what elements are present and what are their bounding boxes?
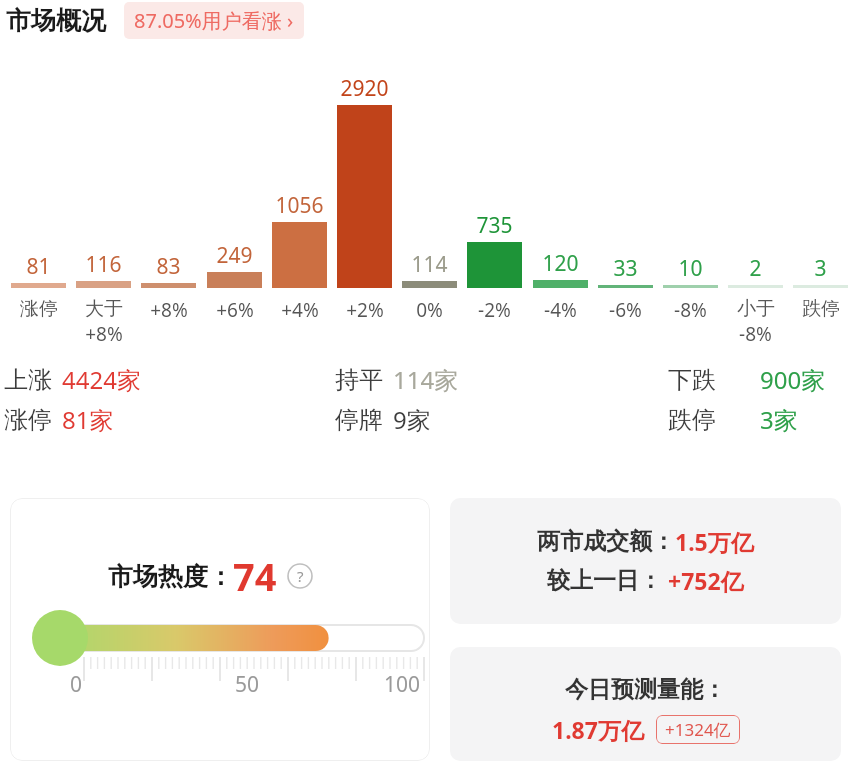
staticText: 大于 (85, 297, 123, 321)
staticText: -6% (609, 297, 642, 323)
staticText: 87.05%用户看涨 › (134, 7, 294, 34)
staticText: 下跌 (668, 365, 716, 395)
staticText: 116 (85, 250, 122, 279)
staticText: 小于 (737, 297, 775, 321)
staticText: 10 (678, 254, 703, 283)
staticText: +6% (216, 297, 254, 323)
staticText: 3家 (760, 403, 798, 436)
staticText: 1.87万亿 (552, 714, 644, 745)
staticText: 900家 (760, 363, 826, 396)
staticText: 停牌 (335, 405, 383, 435)
staticText: 83 (156, 252, 181, 281)
staticText: ? (297, 566, 304, 586)
staticText: 持平 (335, 365, 383, 395)
staticText: 81 (26, 252, 51, 281)
staticText: +752亿 (662, 565, 744, 596)
staticText: 3 (814, 254, 827, 283)
staticText: +8% (150, 297, 188, 323)
staticText: 33 (613, 254, 638, 283)
staticText: 50 (235, 670, 260, 699)
button[interactable]: 87.05%用户看涨 › (124, 2, 304, 39)
staticText: -8% (674, 297, 707, 323)
staticText: 2920 (340, 74, 389, 103)
staticText: 81家 (62, 403, 114, 436)
staticText: 涨停 (4, 405, 52, 435)
staticText: 2 (749, 254, 762, 283)
staticText: 249 (216, 241, 253, 270)
button[interactable]: 今日预测量能： (450, 647, 841, 761)
staticText: 较上一日： (547, 566, 662, 595)
staticText: +2% (346, 297, 384, 323)
staticText: 跌停 (668, 405, 716, 435)
staticText: 735 (476, 211, 513, 240)
button[interactable]: 市场热度： (10, 498, 430, 761)
staticText: -2% (478, 297, 511, 323)
staticText: 114家 (393, 363, 459, 396)
staticText: 9家 (393, 403, 431, 436)
staticText: 100 (384, 670, 421, 699)
staticText: -4% (544, 297, 577, 323)
button[interactable]: 两市成交额： (450, 498, 841, 624)
staticText: 0% (416, 297, 443, 323)
staticText: 市场热度： (108, 561, 233, 592)
staticText: 涨停 (20, 297, 58, 321)
staticText: 跌停 (802, 297, 840, 321)
staticText: +8% (85, 321, 123, 347)
staticText: 1.5万亿 (675, 526, 754, 557)
button[interactable]: 帮助说明 (287, 563, 313, 589)
staticText: +1324亿 (665, 718, 731, 741)
staticText: 1056 (275, 191, 324, 220)
staticText: 0 (70, 670, 83, 699)
staticText: 120 (542, 249, 579, 278)
staticText: +4% (281, 297, 319, 323)
staticText: 上涨 (4, 365, 52, 395)
staticText: 今日预测量能： (565, 675, 726, 704)
staticText: 两市成交额： (537, 527, 675, 556)
staticText: 74 (233, 550, 277, 602)
staticText: 4424家 (62, 363, 141, 396)
staticText: 市场概况 (6, 5, 106, 36)
staticText: -8% (739, 321, 772, 347)
staticText: 114 (411, 250, 448, 279)
